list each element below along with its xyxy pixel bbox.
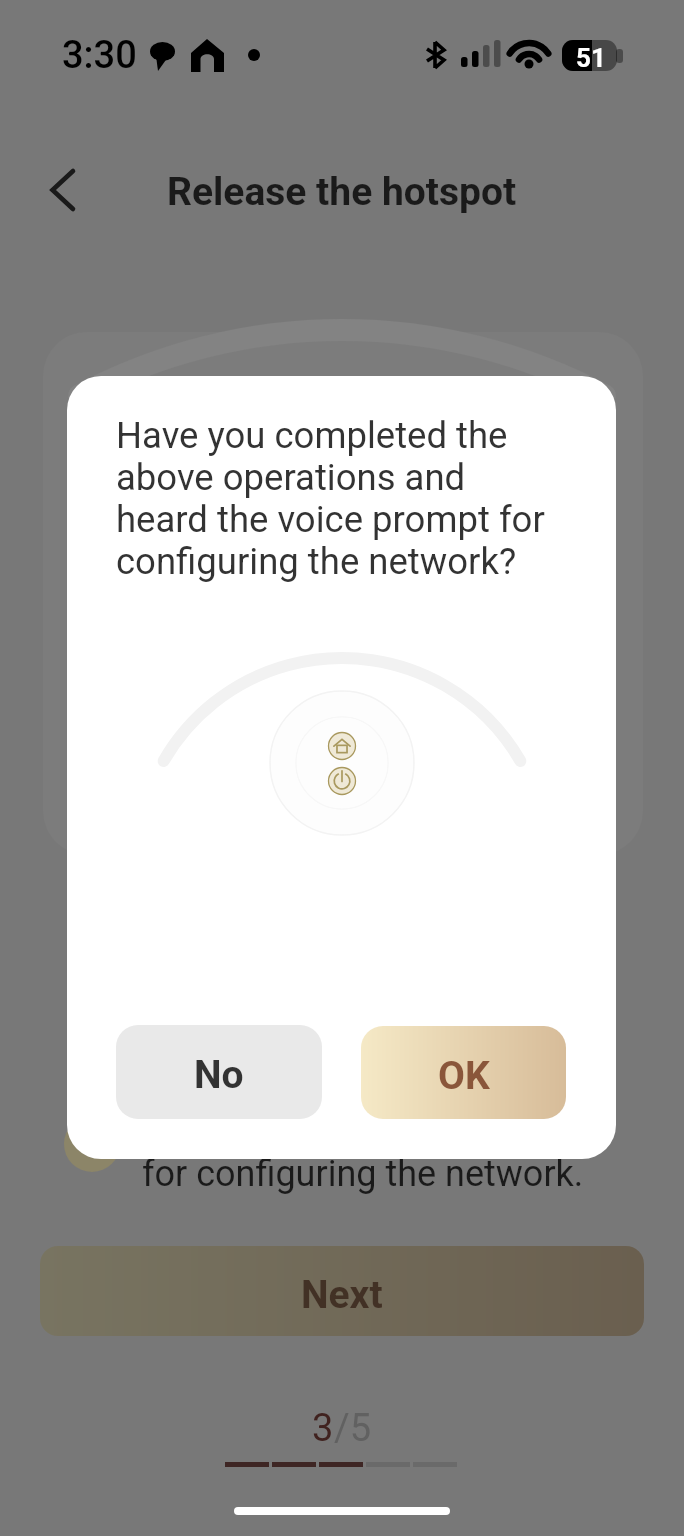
button[interactable]: No	[116, 1025, 322, 1119]
staticText: Release the hotspot	[167, 169, 517, 215]
staticText: Have you completed the above operations …	[116, 414, 548, 583]
staticText: /5	[334, 1406, 372, 1451]
button[interactable]: Next	[40, 1246, 644, 1336]
button[interactable]: OK	[361, 1026, 566, 1119]
staticText: for configuring the network.	[142, 1153, 584, 1195]
staticText: No	[194, 1052, 244, 1098]
staticText: 3	[312, 1406, 334, 1451]
button[interactable]: Back	[28, 157, 96, 225]
staticText: 51	[576, 43, 606, 73]
staticText: OK	[438, 1053, 490, 1099]
staticText: Next	[301, 1272, 383, 1318]
staticText: 3:30	[62, 33, 137, 78]
